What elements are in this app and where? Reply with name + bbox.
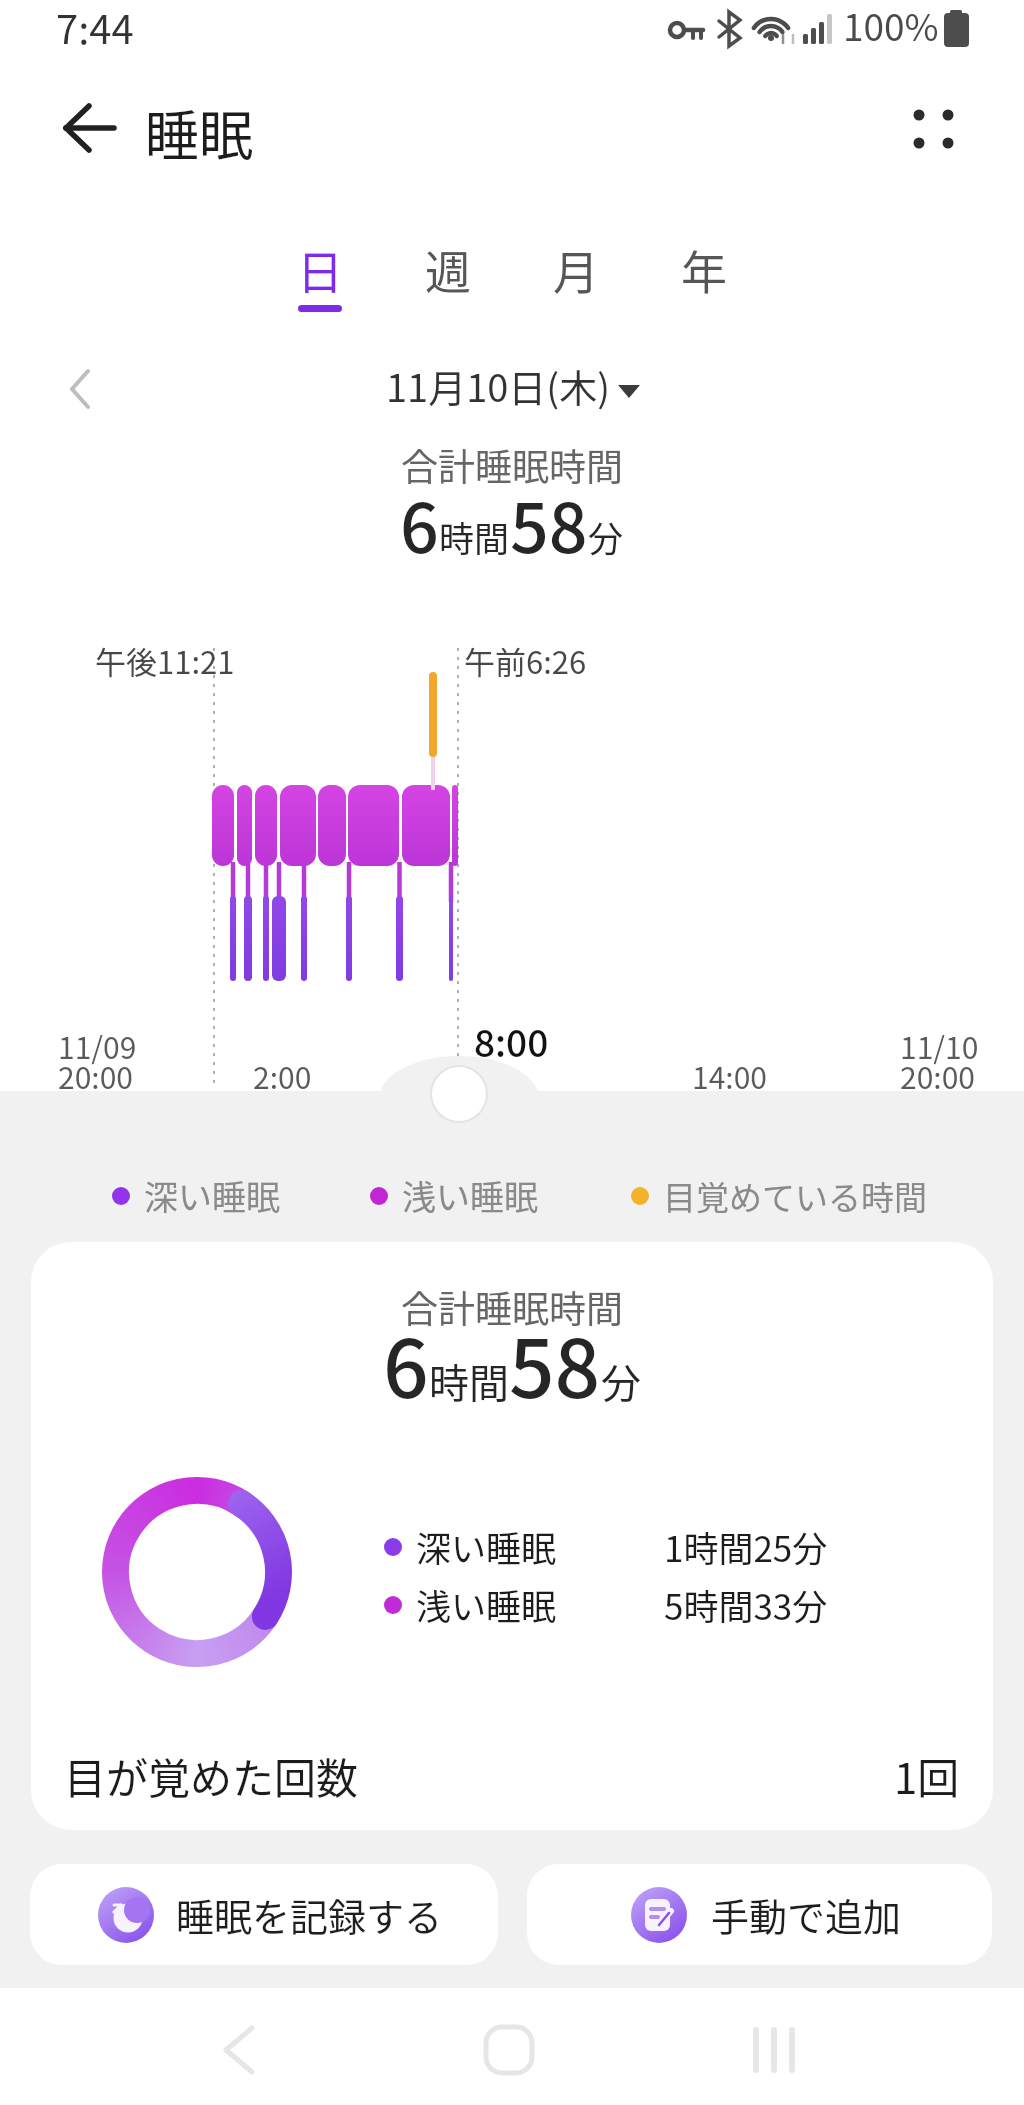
staticText: 深い睡眠 [416, 1521, 557, 1572]
staticText: 月 [553, 236, 599, 303]
staticText: 20:00 [58, 1054, 133, 1097]
staticText: 2:00 [253, 1054, 312, 1097]
button[interactable] [48, 96, 114, 162]
button[interactable]: 年 [681, 236, 727, 312]
button[interactable] [190, 1995, 290, 2095]
staticText: 7:44 [56, 0, 134, 56]
staticText: 睡眠を記録する [176, 1887, 443, 1942]
button[interactable]: 手動で追加 [527, 1864, 992, 1965]
staticText: 分 [588, 511, 624, 562]
button[interactable]: 日 [297, 236, 343, 312]
staticText: 58 [510, 474, 588, 572]
button[interactable]: 目が覚めた回数 [31, 1730, 993, 1820]
staticText: 睡眠 [145, 93, 253, 171]
staticText: 合計睡眠時間 [401, 438, 623, 492]
staticText: 20:00 [900, 1054, 975, 1097]
button[interactable]: 週 [425, 236, 471, 312]
staticText: 11/10 [900, 1024, 979, 1067]
button[interactable]: 睡眠を記録する [30, 1864, 498, 1965]
staticText: 午後11:21 [95, 638, 235, 683]
staticText: 目覚めている時間 [663, 1172, 927, 1220]
staticText: 14:00 [692, 1054, 767, 1097]
staticText: 手動で追加 [711, 1887, 902, 1942]
button[interactable] [460, 1995, 560, 2095]
staticText: 年 [681, 236, 727, 303]
staticText: 11/09 [58, 1024, 137, 1067]
staticText: 1時間25分 [664, 1521, 828, 1572]
staticText: 日 [297, 236, 343, 303]
staticText: 11月10日(木) [386, 358, 611, 413]
staticText: 分 [601, 1352, 641, 1410]
staticText: 合計睡眠時間 [401, 1280, 623, 1334]
staticText: 午前6:26 [464, 638, 587, 683]
staticText: 8:00 [474, 1014, 549, 1068]
staticText: 目が覚めた回数 [64, 1745, 359, 1806]
staticText: 100% [843, 0, 939, 52]
button[interactable] [380, 356, 646, 416]
staticText: 深い睡眠 [144, 1171, 280, 1220]
staticText: 週 [425, 236, 471, 303]
staticText: 1回 [894, 1745, 960, 1806]
button[interactable] [898, 94, 968, 164]
staticText: 浅い睡眠 [402, 1171, 538, 1220]
button[interactable]: 月 [553, 236, 599, 312]
staticText: 5時間33分 [664, 1579, 828, 1630]
staticText: 58 [509, 1305, 601, 1421]
button[interactable] [722, 1995, 822, 2095]
staticText: 6 [383, 1305, 429, 1421]
staticText: 時間 [439, 511, 510, 562]
staticText: 時間 [429, 1352, 509, 1410]
staticText: 6 [400, 474, 439, 572]
staticText: 浅い睡眠 [416, 1579, 557, 1630]
